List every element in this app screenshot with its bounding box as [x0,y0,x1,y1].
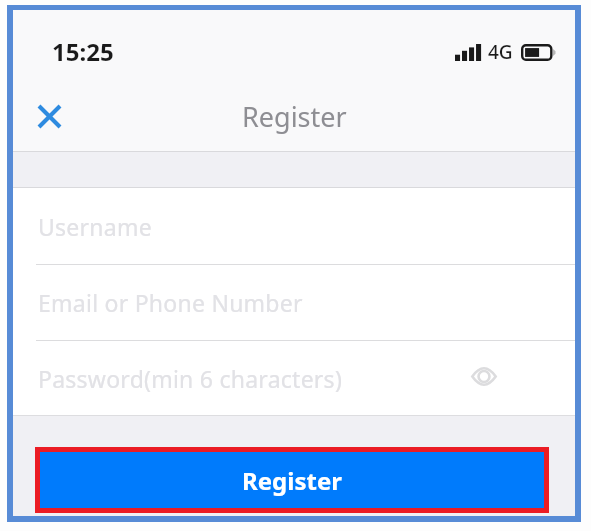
staticText: 4G [488,39,513,65]
button[interactable]: Username [13,188,575,264]
staticText: Register [242,464,342,497]
staticText: Username [38,211,152,242]
button[interactable]: Password(min 6 characters) [13,341,575,415]
button[interactable]: Show password [466,358,502,394]
staticText: Register [242,98,347,135]
button[interactable]: Close [28,95,70,137]
staticText: Email or Phone Number [38,287,303,318]
staticText: Password(min 6 characters) [38,363,343,394]
staticText: 15:25 [52,35,114,68]
button[interactable]: Email or Phone Number [13,265,575,340]
button[interactable]: Register [40,452,544,508]
